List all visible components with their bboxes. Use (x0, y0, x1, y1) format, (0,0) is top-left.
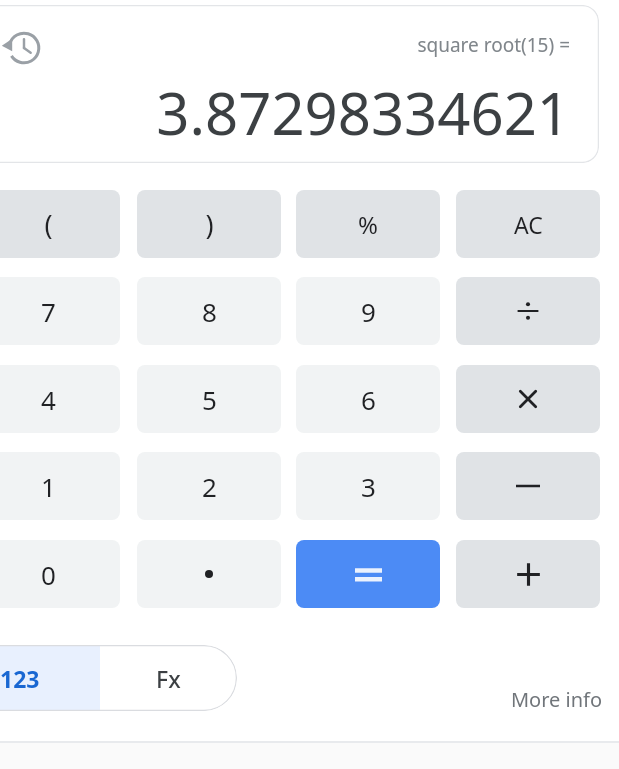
staticText: 4 (41, 382, 56, 417)
button[interactable]: ) (137, 190, 281, 258)
button[interactable]: 6 (296, 365, 440, 433)
button[interactable]: % (296, 190, 440, 258)
button[interactable]: Equals (296, 540, 440, 608)
staticText: 9 (361, 294, 376, 329)
button[interactable]: More info (455, 678, 602, 720)
staticText: ( (44, 206, 53, 243)
button[interactable]: Fx (100, 645, 237, 711)
button[interactable]: Multiply (456, 365, 600, 433)
button[interactable]: 7 (0, 277, 120, 345)
staticText: More info (510, 686, 602, 713)
button[interactable]: Plus (456, 540, 600, 608)
button[interactable]: 1 (0, 452, 120, 520)
staticText: Fx (156, 663, 181, 694)
staticText: 5 (202, 382, 217, 417)
staticText: AC (514, 209, 543, 240)
staticText: 8 (202, 294, 217, 329)
staticText: % (358, 208, 378, 241)
button[interactable]: Decimal point (137, 540, 281, 608)
button[interactable]: 0 (0, 540, 120, 608)
staticText: 3.87298334621 (156, 73, 570, 147)
button[interactable]: 2 (137, 452, 281, 520)
staticText: 6 (361, 382, 376, 417)
button[interactable]: AC (456, 190, 600, 258)
button[interactable]: 5 (137, 365, 281, 433)
staticText: 7 (41, 294, 56, 329)
staticText: 123 (0, 663, 40, 694)
button[interactable]: 3 (296, 452, 440, 520)
staticText: square root(15) = (417, 32, 570, 58)
button[interactable]: Minus (456, 452, 600, 520)
staticText: 2 (202, 469, 217, 504)
button[interactable]: 4 (0, 365, 120, 433)
staticText: 1 (41, 469, 56, 504)
button[interactable]: 9 (296, 277, 440, 345)
button[interactable]: 123 (0, 645, 100, 711)
staticText: ) (205, 206, 214, 243)
button[interactable]: ( (0, 190, 120, 258)
button[interactable]: History (4, 28, 44, 68)
staticText: 0 (41, 557, 56, 592)
button[interactable]: 8 (137, 277, 281, 345)
button[interactable]: Divide (456, 277, 600, 345)
staticText: 3 (361, 469, 376, 504)
